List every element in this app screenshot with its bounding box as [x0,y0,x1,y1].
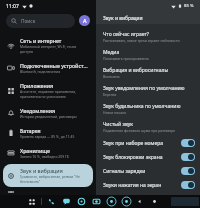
staticText: Вибрация и вибросигналы [103,67,169,74]
staticText: Показывать проигрыватель [103,56,149,61]
staticText: Звуки нажатия на экран [103,182,162,189]
staticText: Звук и вибрация [103,15,143,22]
staticText: Сигналы зарядки [103,168,146,175]
staticText: Подавление фонового шума при разговоре [103,128,176,133]
staticText: Что сейчас играет? [103,31,149,38]
staticText: Bluetooth, подключения [20,69,61,74]
staticText: Звук и вибрация [20,167,63,174]
staticText: Медиа [103,49,120,56]
button[interactable]: Чистый звук [96,118,200,136]
staticText: 85 % [184,3,194,9]
button[interactable]: Сообщения [62,197,71,206]
staticText: Хранилище [20,147,50,154]
staticText: История уведомлений, разговоры [20,114,77,119]
button[interactable]: Батарея [3,124,93,142]
button[interactable]: Камера [92,197,101,206]
button[interactable]: Все приложения [28,198,36,206]
button[interactable]: Аккаунт [79,15,90,26]
staticText: Уведомления [20,107,56,114]
button[interactable]: Главный экран [152,199,157,204]
staticText: 11:07 [6,3,19,10]
button[interactable]: Звуки нажатия на экран [181,181,195,189]
button[interactable]: Поиск [6,14,75,28]
button[interactable]: Приложения [3,79,93,102]
staticText: Громкость, вибросигнал, режим "Не беспок… [20,174,89,184]
staticText: Уровень заряда — 85 %, до 11:45 [20,134,75,139]
staticText: Батарея [20,127,41,134]
staticText: Звук при наборе номера [103,140,163,147]
staticText: Звук будильника по умолчанию [103,103,181,110]
staticText: Включено [103,74,120,79]
button[interactable]: Подключенные устройства [3,59,93,77]
staticText: Ассистент, недавние приложения, приложен… [20,89,89,99]
button[interactable]: Звук и вибрация [3,164,93,187]
staticText: Чистый звук [103,121,133,128]
button[interactable]: Назад [137,199,142,204]
button[interactable]: Настройки [77,197,86,206]
button[interactable]: Звук блокировки экрана [96,150,200,164]
button[interactable]: Что сейчас играет? [96,28,200,46]
staticText: Новое начало [103,110,127,115]
button[interactable]: Уведомления [3,104,93,122]
staticText: Распознавать, какие треки играют поблизо… [103,38,180,43]
button[interactable]: Медиа [122,197,131,206]
button[interactable]: Звук при наборе номера [96,136,200,150]
staticText: Сеть и интернет [20,37,62,44]
button[interactable]: Медиа [96,46,200,64]
button[interactable]: Звуки нажатия на экран [96,178,200,192]
staticText: Березка [103,92,117,97]
button[interactable]: Вибрация и вибросигналы [96,64,200,82]
staticText: Звук блокировки экрана [103,154,163,161]
staticText: Приложения [20,82,53,89]
button[interactable]: Звук блокировки экрана [181,153,195,161]
staticText: Звук уведомления по умолчанию [103,85,185,92]
button[interactable]: Сигналы зарядки [96,164,200,178]
button[interactable]: Экран и сенсорное [3,189,93,194]
button[interactable]: Сигналы зарядки [181,167,195,175]
button[interactable]: Звук будильника по умолчанию [96,100,200,118]
button[interactable]: Хранилище [3,144,93,162]
staticText: A [83,17,87,24]
button[interactable]: Сеть и интернет [3,34,93,57]
staticText: Подключенные устройства [20,62,89,69]
staticText: Занято 16 %, свободно 209 ГБ [20,154,69,159]
staticText: Мобильный интернет, Wi-Fi, точка доступа [20,44,89,54]
button[interactable]: Музыка [107,197,116,206]
button[interactable]: Звук при наборе номера [181,139,195,147]
button[interactable]: Звук уведомления по умолчанию [96,82,200,100]
button[interactable]: Телефон [47,197,56,206]
staticText: Поиск [21,18,36,25]
